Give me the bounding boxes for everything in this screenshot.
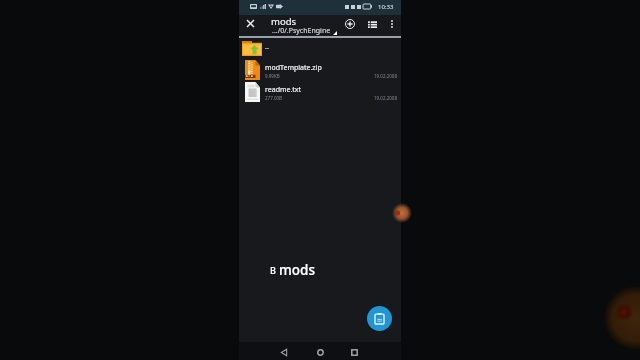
staticText: mods — [279, 261, 315, 279]
staticText: 19.02.2008 — [374, 95, 398, 101]
button[interactable]: View mode — [363, 15, 381, 33]
button[interactable]: Recents — [346, 344, 362, 360]
button[interactable]: Back — [276, 344, 292, 360]
staticText: mods — [271, 15, 297, 28]
staticText: modTemplate.zip — [265, 63, 322, 73]
staticText: .../0/.PsychEngine — [272, 26, 331, 36]
button[interactable]: Home — [312, 344, 328, 360]
staticText: 19.02.2008 — [374, 73, 398, 79]
button[interactable]: Paste — [367, 306, 392, 331]
staticText: readme.txt — [265, 85, 302, 95]
button[interactable]: modTemplate.zip — [239, 59, 401, 81]
staticText: В — [270, 264, 276, 276]
button[interactable]: Close — [242, 15, 259, 32]
staticText: 10:33 — [378, 3, 394, 11]
button[interactable]: More options — [383, 15, 401, 33]
button[interactable]: readme.txt — [239, 81, 401, 103]
staticText: .. — [265, 42, 269, 52]
staticText: 277.00B — [265, 95, 283, 101]
staticText: 9.99KB — [265, 73, 280, 79]
button[interactable]: Add — [341, 15, 359, 33]
button[interactable]: .. — [239, 38, 401, 59]
